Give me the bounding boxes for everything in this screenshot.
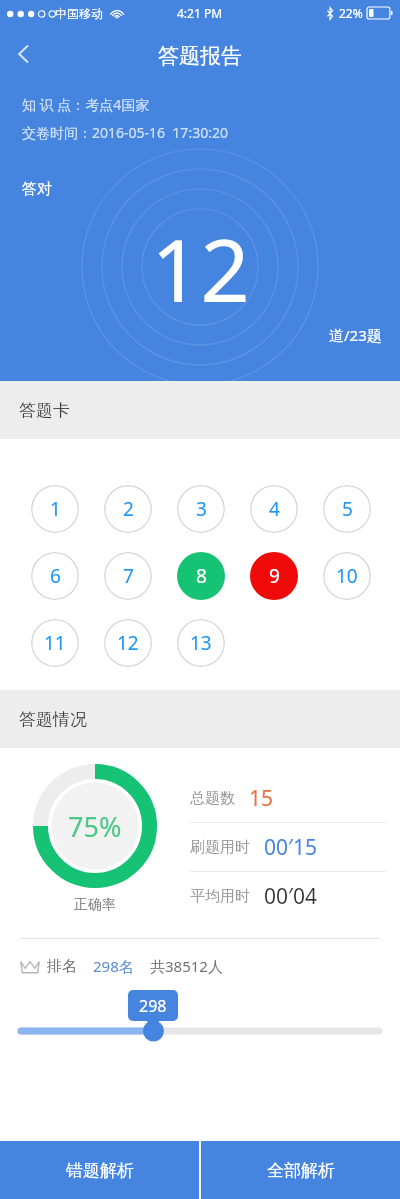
staticText: 总题数 — [190, 789, 235, 808]
button[interactable]: 8 — [177, 552, 225, 600]
button[interactable]: 6 — [31, 552, 79, 600]
staticText: 298名 — [93, 956, 134, 976]
staticText: 7 — [123, 563, 134, 589]
staticText: 答题报告 — [158, 43, 242, 69]
button[interactable]: 9 — [250, 552, 298, 600]
staticText: 2 — [123, 496, 134, 522]
staticText: 中国移动 — [55, 6, 103, 21]
staticText: 10 — [336, 563, 358, 589]
staticText: 4 — [269, 496, 280, 522]
staticText: 1 — [50, 496, 61, 522]
button[interactable]: 错题解析 — [0, 1141, 199, 1199]
button[interactable]: 4 — [250, 485, 298, 533]
staticText: 4:21 PM — [177, 5, 223, 21]
button[interactable]: 1 — [31, 485, 79, 533]
staticText: 00′04 — [264, 882, 317, 911]
staticText: 11 — [44, 630, 66, 656]
staticText: 知 识 点：考点4国家 — [22, 95, 150, 114]
staticText: 答题卡 — [19, 400, 70, 421]
button[interactable]: 7 — [104, 552, 152, 600]
staticText: 全部解析 — [267, 1160, 335, 1181]
staticText: 交卷时间：2016-05-16 17:30:20 — [22, 123, 228, 142]
staticText: 共38512人 — [150, 956, 223, 976]
button[interactable]: 3 — [177, 485, 225, 533]
staticText: 答对 — [22, 180, 52, 199]
staticText: 3 — [196, 496, 207, 522]
button[interactable]: 全部解析 — [201, 1141, 400, 1199]
staticText: 22% — [339, 5, 363, 21]
staticText: 平均用时 — [190, 887, 250, 906]
staticText: 5 — [342, 496, 353, 522]
staticText: 刷题用时 — [190, 838, 250, 857]
staticText: 298 — [139, 995, 167, 1017]
staticText: 15 — [249, 784, 274, 813]
staticText: 排名 — [47, 957, 77, 976]
staticText: 6 — [50, 563, 61, 589]
staticText: 错题解析 — [66, 1160, 134, 1181]
staticText: 75% — [68, 808, 122, 845]
button[interactable]: 13 — [177, 619, 225, 667]
button[interactable]: 10 — [323, 552, 371, 600]
button[interactable]: 11 — [31, 619, 79, 667]
staticText: 答题情况 — [19, 709, 87, 730]
button[interactable]: 5 — [323, 485, 371, 533]
staticText: 正确率 — [74, 896, 116, 914]
staticText: 9 — [269, 563, 280, 589]
staticText: 8 — [196, 563, 207, 589]
staticText: 道/23题 — [329, 325, 382, 345]
button[interactable]: Back — [2, 32, 46, 76]
staticText: 12 — [151, 210, 250, 327]
button[interactable]: 2 — [104, 485, 152, 533]
staticText: 00′15 — [264, 833, 317, 862]
staticText: 13 — [190, 630, 212, 656]
button[interactable]: 12 — [104, 619, 152, 667]
staticText: 12 — [117, 630, 139, 656]
